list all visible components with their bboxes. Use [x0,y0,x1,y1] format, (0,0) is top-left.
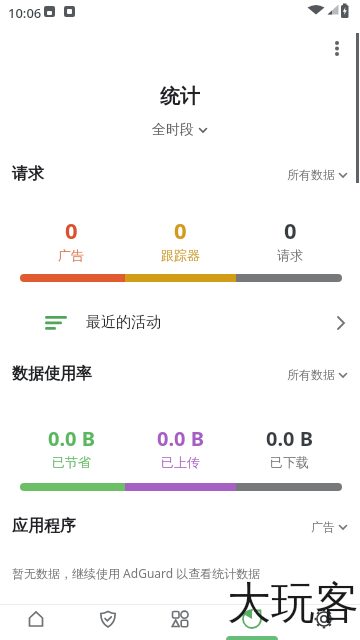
staticText: 0 [65,215,78,245]
staticText: 10:06 [8,4,42,22]
staticText: 0 [174,215,187,245]
staticText: 应用程序 [12,516,76,536]
button[interactable] [216,604,288,640]
staticText: 全时段 [152,121,194,139]
button[interactable] [144,604,216,640]
staticText: 数据使用率 [12,364,92,384]
button[interactable] [0,604,72,640]
button[interactable] [325,36,349,60]
staticText: 请求 [277,247,303,263]
staticText: 请求 [12,164,44,184]
staticText: 0.0 B [157,425,204,452]
button[interactable] [288,604,360,640]
staticText: 跟踪器 [161,247,200,263]
staticText: 已节省 [52,454,91,470]
staticText: 广告 [311,519,335,534]
button[interactable] [72,604,144,640]
button[interactable]: 所有数据 [287,167,348,182]
staticText: 暂无数据，继续使用 AdGuard 以查看统计数据 [12,565,261,581]
staticText: 大玩客 [227,576,359,631]
staticText: 所有数据 [287,367,335,382]
staticText: 广告 [58,247,84,263]
staticText: 最近的活动 [86,313,161,332]
staticText: 已下载 [270,454,309,470]
button[interactable]: 最近的活动 [0,304,360,341]
button[interactable]: 全时段 [152,121,208,139]
staticText: 所有数据 [287,167,335,182]
button[interactable]: 广告 [311,519,348,534]
staticText: 统计 [0,84,360,109]
staticText: 0.0 B [48,425,95,452]
staticText: 0 [284,215,297,245]
staticText: 已上传 [161,454,200,470]
staticText: 0.0 B [266,425,313,452]
button[interactable]: 所有数据 [287,367,348,382]
